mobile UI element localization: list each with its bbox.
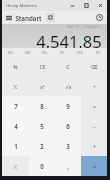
button[interactable]: C: [55, 57, 81, 76]
staticText: x²: [40, 83, 45, 90]
staticText: ,: [67, 162, 69, 170]
staticText: ⁺⁄₋: [13, 163, 18, 170]
button[interactable]: M+: [36, 48, 53, 57]
staticText: M+: [42, 50, 48, 55]
button[interactable]: 1: [2, 136, 29, 156]
button[interactable]: MR: [19, 48, 36, 57]
staticText: C: [66, 63, 70, 70]
button[interactable]: ¹⁄ₓ: [2, 76, 29, 96]
staticText: MC: [7, 50, 14, 55]
button[interactable]: CE: [29, 57, 55, 76]
staticText: 2: [40, 142, 44, 150]
staticText: ⌫: [90, 64, 98, 70]
staticText: 8: [40, 102, 44, 110]
button[interactable]: ,: [55, 156, 81, 176]
staticText: 4.541,85: [36, 30, 102, 48]
button[interactable]: 7: [2, 96, 29, 116]
staticText: 7: [14, 102, 18, 110]
button[interactable]: 4: [2, 116, 29, 136]
button[interactable]: MS: [71, 48, 89, 57]
staticText: 0: [40, 162, 44, 170]
button[interactable]: x²: [29, 76, 55, 96]
button[interactable]: 9: [55, 96, 81, 116]
button[interactable]: History: [94, 12, 105, 23]
button[interactable]: MC: [2, 48, 19, 57]
staticText: M-: [60, 50, 65, 55]
button[interactable]: Menu: [2, 11, 15, 24]
button[interactable]: M˅: [89, 48, 107, 57]
button[interactable]: Minimize: [65, 0, 79, 11]
button[interactable]: √x: [55, 76, 81, 96]
button[interactable]: 2: [29, 136, 55, 156]
staticText: ¹⁄ₓ: [13, 83, 18, 90]
button[interactable]: ×: [81, 96, 107, 116]
button[interactable]: Close: [93, 0, 107, 11]
button[interactable]: Keep on top: [46, 13, 55, 22]
staticText: 5: [40, 122, 44, 130]
button[interactable]: ÷: [81, 76, 107, 96]
button[interactable]: %: [2, 57, 29, 76]
button[interactable]: Maximize: [79, 0, 93, 11]
staticText: CE: [39, 63, 46, 70]
button[interactable]: 3: [55, 136, 81, 156]
button[interactable]: 8: [29, 96, 55, 116]
button[interactable]: 0: [29, 156, 55, 176]
staticText: ÷: [93, 83, 96, 90]
button[interactable]: +: [81, 136, 107, 156]
staticText: %: [13, 63, 18, 70]
staticText: M˅: [96, 50, 101, 55]
button[interactable]: ⌫: [81, 57, 107, 76]
staticText: MS: [77, 50, 83, 55]
staticText: 3: [66, 142, 70, 150]
staticText: 6: [66, 122, 70, 130]
button[interactable]: −: [81, 116, 107, 136]
button[interactable]: ⁺⁄₋: [2, 156, 29, 176]
staticText: MR: [24, 50, 31, 55]
button[interactable]: =: [81, 156, 107, 176]
staticText: +: [93, 143, 96, 150]
staticText: Standart: [15, 14, 42, 22]
staticText: √x: [65, 83, 72, 90]
button[interactable]: 5: [29, 116, 55, 136]
staticText: ×: [93, 103, 96, 110]
staticText: Hesap Makinesi: [6, 3, 37, 9]
staticText: 4: [14, 122, 18, 130]
staticText: 9: [66, 102, 70, 110]
staticText: −: [93, 123, 96, 130]
staticText: 2877,5 + 1664,35 =: [66, 24, 102, 29]
staticText: =: [93, 163, 96, 170]
button[interactable]: M-: [53, 48, 71, 57]
button[interactable]: 6: [55, 116, 81, 136]
staticText: 1: [14, 142, 18, 150]
